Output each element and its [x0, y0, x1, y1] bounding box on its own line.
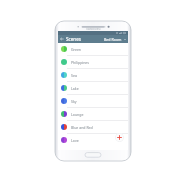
staticText: Bed Room [104, 37, 122, 42]
button[interactable]: Sea [58, 69, 128, 81]
button[interactable]: Green [58, 43, 128, 55]
button[interactable]: Lake [58, 82, 128, 94]
button[interactable]: Bed Room [102, 35, 128, 43]
button[interactable]: Love [58, 134, 128, 146]
staticText: Green [71, 47, 82, 52]
staticText: Sky [71, 99, 77, 104]
staticText: Sea [71, 73, 77, 78]
staticText: Lounge [71, 112, 84, 117]
staticText: Lake [71, 86, 79, 91]
staticText: Blue and Red [71, 125, 93, 130]
staticText: Philippines [71, 60, 90, 65]
staticText: SAMSUNG [86, 27, 101, 31]
button[interactable]: Philippines [58, 56, 128, 68]
button[interactable]: Blue and Red [58, 121, 128, 133]
button[interactable]: Sky [58, 95, 128, 107]
staticText: Scenes [66, 36, 81, 42]
staticText: Love [71, 138, 79, 143]
button[interactable]: Back [58, 35, 66, 43]
button[interactable] [85, 152, 101, 157]
button[interactable]: Add scene [115, 133, 124, 142]
button[interactable]: Lounge [58, 108, 128, 120]
